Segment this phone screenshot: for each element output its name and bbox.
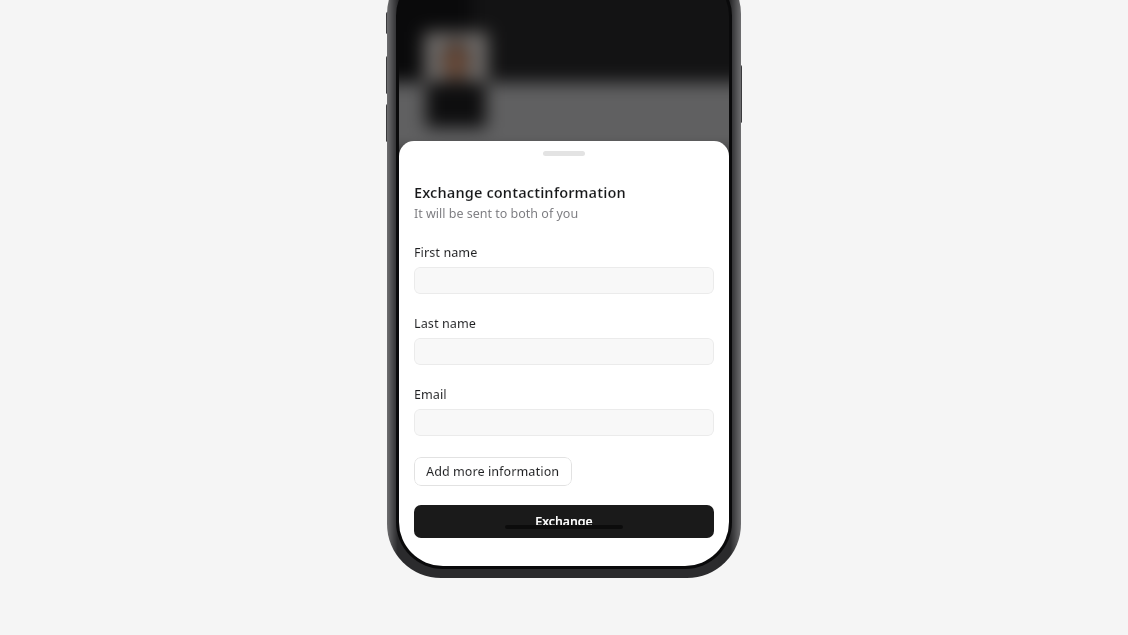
staticText: Exchange contactinformation	[414, 182, 626, 202]
staticText: Exchange	[535, 513, 593, 530]
button[interactable]: Exchange	[414, 505, 714, 538]
staticText: First name	[414, 244, 478, 261]
button[interactable]: Add more information	[414, 457, 572, 486]
staticText: It will be sent to both of you	[414, 205, 579, 222]
button[interactable]: Email	[414, 409, 714, 436]
button[interactable]: First name	[414, 267, 714, 294]
staticText: Add more information	[426, 463, 560, 480]
staticText: Last name	[414, 315, 476, 332]
staticText: Email	[414, 386, 447, 403]
button[interactable]: Last name	[414, 338, 714, 365]
